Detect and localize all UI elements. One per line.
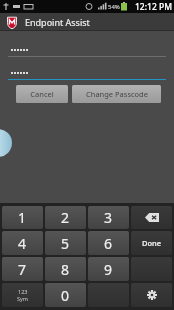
staticText: 123 [18, 288, 28, 295]
button[interactable]: Done [131, 231, 172, 255]
button[interactable]: 3 [88, 206, 129, 229]
button[interactable]: Change Passcode [72, 85, 161, 103]
staticText: 54% [108, 3, 120, 11]
staticText: 12:12 PM [135, 1, 172, 13]
staticText: 5 [61, 234, 70, 253]
button[interactable]: Settings [131, 283, 172, 307]
staticText: Sym [17, 295, 28, 302]
staticText: Change Passcode [86, 89, 148, 99]
button[interactable]: 4 [2, 231, 43, 255]
button[interactable]: 9 [88, 257, 129, 281]
button[interactable]: 0 [45, 283, 86, 307]
button[interactable] [131, 257, 172, 281]
staticText: 1 [18, 208, 27, 227]
button[interactable]: Cancel [16, 85, 68, 103]
button[interactable]: Backspace [131, 206, 172, 229]
staticText: 2 [61, 208, 70, 227]
button[interactable]: 6 [88, 231, 129, 255]
staticText: 6 [104, 234, 113, 253]
staticText: 4 [18, 234, 27, 253]
staticText: 9 [104, 260, 113, 279]
staticText: Endpoint Assist [25, 16, 90, 28]
staticText: 8 [61, 260, 70, 279]
staticText: Done [142, 238, 162, 248]
button[interactable]: 8 [45, 257, 86, 281]
button[interactable]: 2 [45, 206, 86, 229]
staticText: Cancel [30, 89, 54, 99]
button[interactable]: Up [3, 13, 21, 31]
button[interactable]: 123 [2, 283, 43, 307]
button[interactable]: 5 [45, 231, 86, 255]
staticText: 3 [104, 208, 113, 227]
button[interactable] [88, 283, 129, 307]
button[interactable]: 7 [2, 257, 43, 281]
button[interactable]: 1 [2, 206, 43, 229]
staticText: 7 [18, 260, 27, 279]
staticText: 0 [61, 286, 70, 305]
